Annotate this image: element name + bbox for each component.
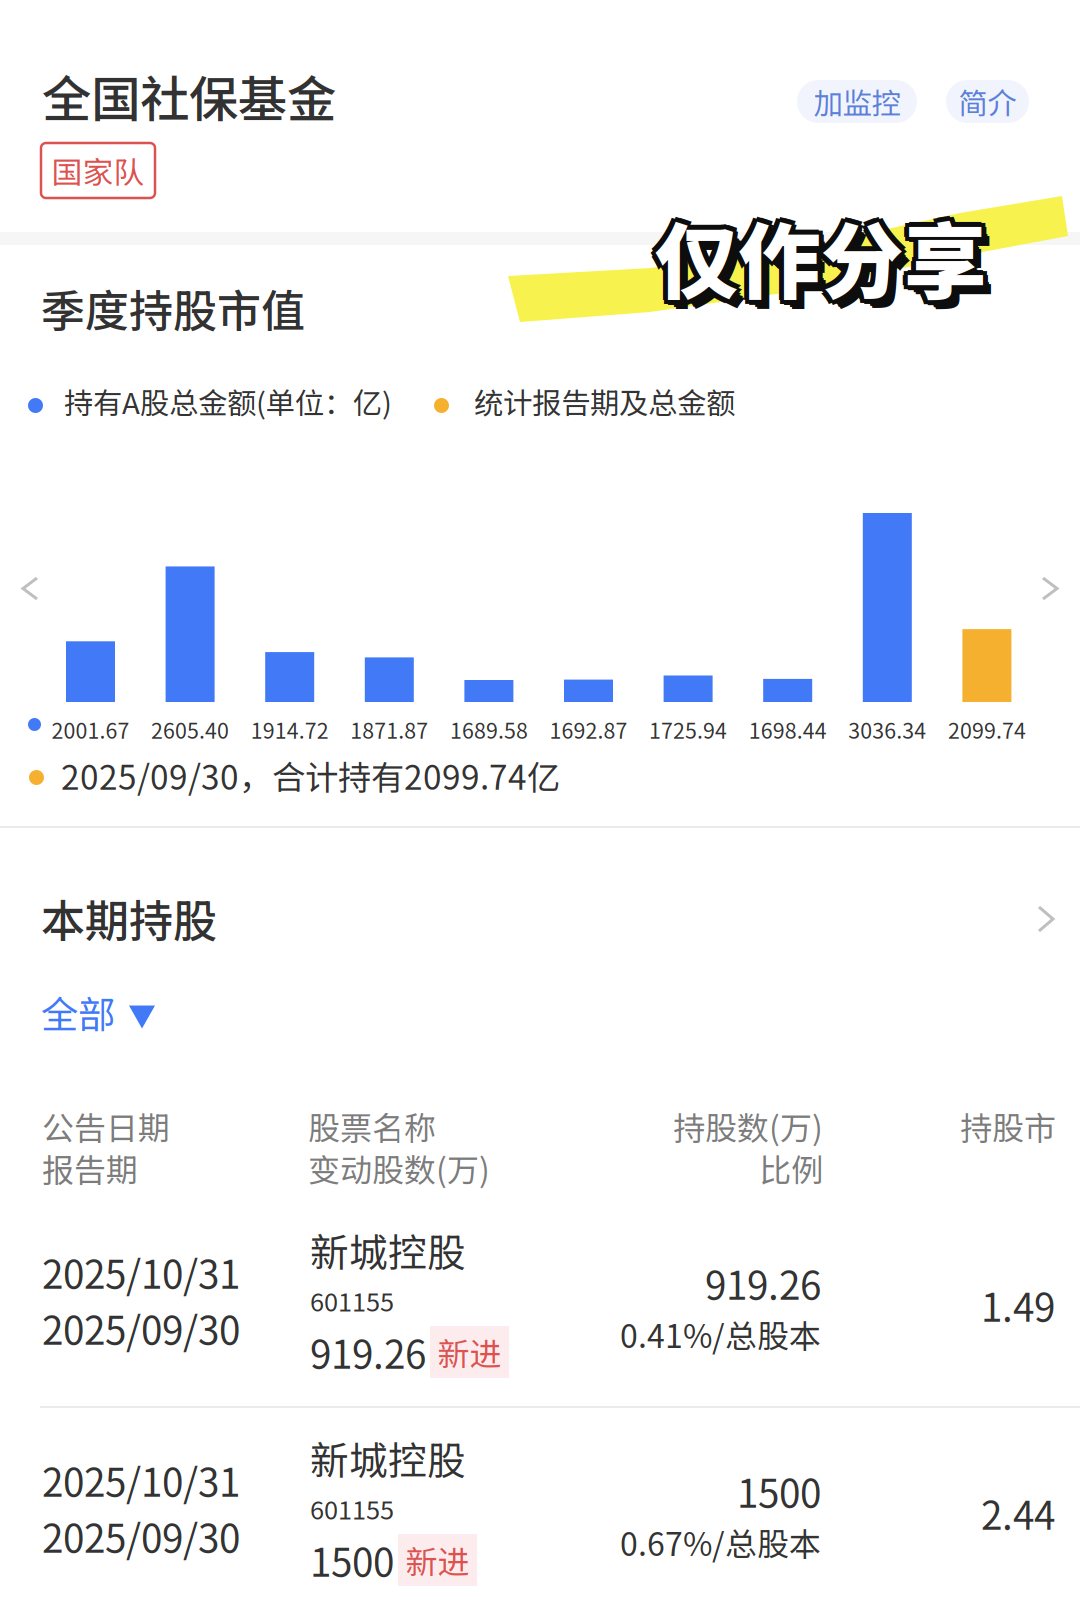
staticText: 919.26 [310, 1324, 426, 1380]
staticText: 仅作分享 [661, 203, 993, 323]
staticText: 新城控股 [310, 1222, 466, 1278]
staticText: 季度持股市值 [41, 276, 305, 340]
staticText: 股票名称 [308, 1103, 436, 1149]
staticText: 新城控股 [310, 1430, 466, 1486]
staticText: 仅作分享 [659, 200, 991, 320]
button[interactable]: 2025/10/31 [0, 0, 1080, 1607]
staticText: 1914.72 [251, 714, 329, 745]
staticText: 变动股数(万) [308, 1145, 490, 1191]
staticText: 601155 [310, 1282, 394, 1319]
staticText: 2025/10/31 [42, 1452, 240, 1508]
staticText: 2025/09/30，合计持有2099.74亿 [61, 751, 560, 799]
staticText: 持股数(万) [673, 1103, 823, 1149]
staticText: 1500 [310, 1532, 394, 1588]
staticText: 公告日期 [42, 1103, 170, 1149]
staticText: 仅作分享 [651, 200, 983, 320]
button[interactable]: 简介 [946, 80, 1029, 123]
staticText: 1.49 [981, 1277, 1055, 1333]
staticText: 持有A股总金额(单位：亿) [64, 380, 392, 422]
staticText: 全国社保基金 [42, 60, 336, 131]
staticText: 统计报告期及总金额 [474, 380, 735, 422]
button[interactable]: 2025/10/31 [0, 0, 1080, 1607]
button[interactable]: 上一页 [0, 0, 1080, 1607]
staticText: 2099.74 [948, 714, 1026, 745]
staticText: 0.41%/总股本 [620, 1311, 821, 1357]
staticText: 持股市 [960, 1103, 1056, 1149]
staticText: 加监控 [813, 80, 900, 123]
staticText: 2025/10/31 [42, 1244, 240, 1300]
staticText: 2605.40 [151, 714, 229, 745]
staticText: 仅作分享 [655, 196, 987, 316]
staticText: 国家队 [51, 148, 144, 193]
staticText: 3036.34 [848, 714, 926, 745]
staticText: 比例 [759, 1145, 823, 1191]
staticText: 新进 [437, 1329, 501, 1375]
button[interactable]: 下一页 [0, 0, 1080, 1607]
staticText: 1725.94 [649, 714, 727, 745]
staticText: 2025/09/30 [42, 1508, 240, 1564]
staticText: 仅作分享 [655, 191, 987, 311]
staticText: 919.26 [705, 1255, 821, 1311]
staticText: 简介 [958, 80, 1016, 123]
staticText: 2001.67 [51, 714, 129, 745]
staticText: 仅作分享 [659, 192, 991, 312]
staticText: 0.67%/总股本 [620, 1519, 821, 1565]
staticText: 全部 [41, 985, 115, 1039]
staticText: 1692.87 [549, 714, 627, 745]
staticText: 仅作分享 [650, 196, 982, 316]
staticText: 报告期 [42, 1145, 138, 1191]
staticText: 新进 [405, 1537, 469, 1583]
button[interactable]: 全部 [0, 0, 1080, 1607]
button[interactable]: 本期持股 [0, 0, 1080, 1607]
staticText: 本期持股 [41, 886, 217, 950]
staticText: 1698.44 [749, 714, 827, 745]
staticText: 1689.58 [450, 714, 528, 745]
staticText: 仅作分享 [651, 192, 983, 312]
button[interactable]: 加监控 [797, 80, 917, 123]
staticText: 2025/09/30 [42, 1300, 240, 1356]
staticText: 仅作分享 [663, 205, 995, 325]
staticText: 1871.87 [350, 714, 428, 745]
staticText: 仅作分享 [660, 196, 992, 316]
staticText: 2.44 [981, 1485, 1055, 1541]
staticText: 仅作分享 [655, 201, 987, 321]
staticText: 1500 [737, 1463, 821, 1519]
staticText: 601155 [310, 1490, 394, 1527]
